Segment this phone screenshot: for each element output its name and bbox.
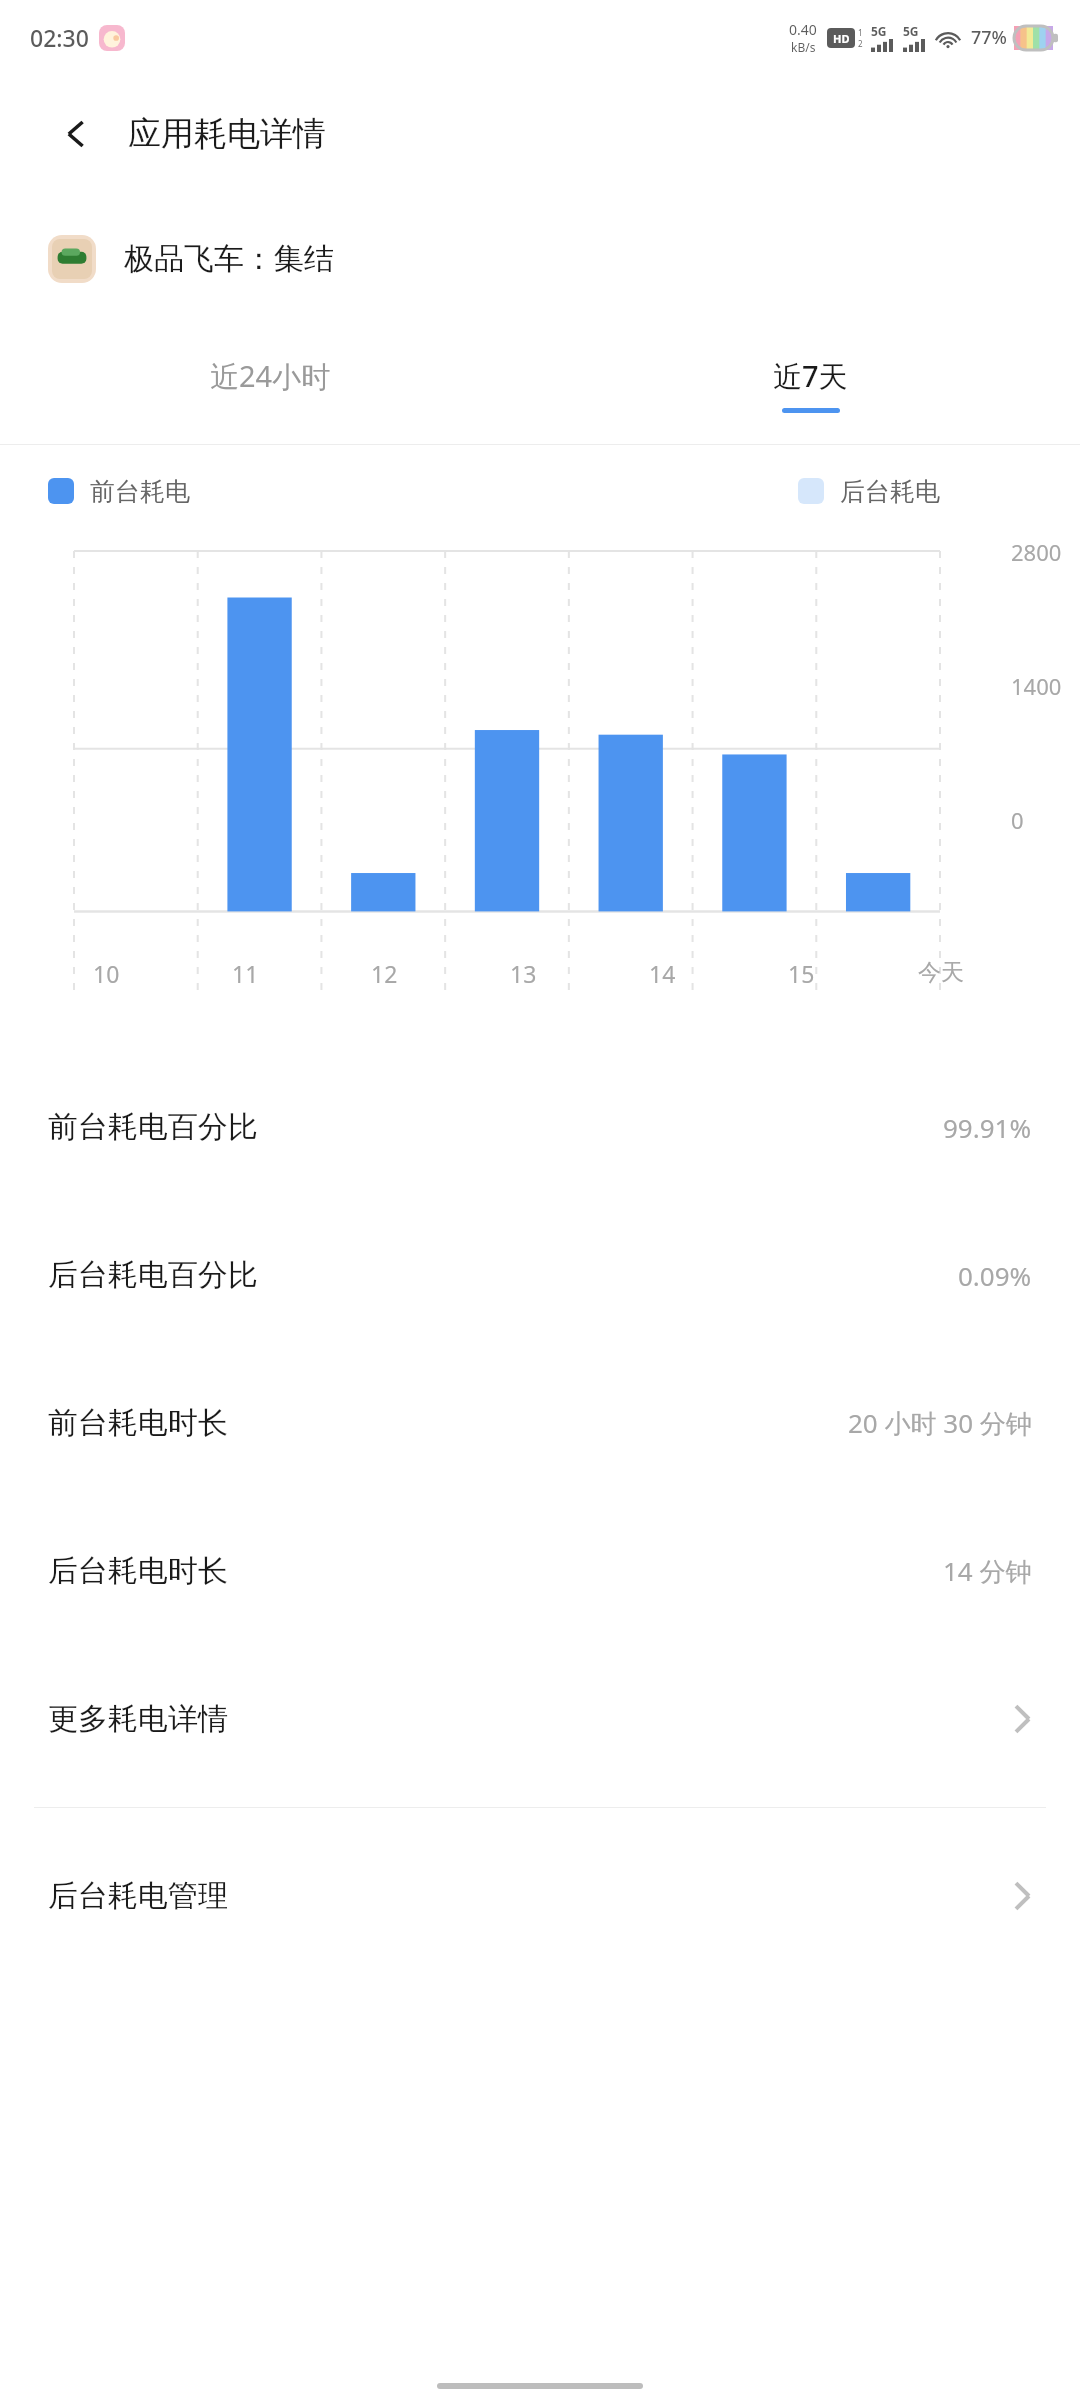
staticText: 2800: [1011, 537, 1062, 567]
staticText: 后台耗电管理: [48, 1877, 228, 1915]
staticText: 0.09%: [958, 1258, 1032, 1293]
button[interactable]: 后台耗电时长: [0, 1497, 1080, 1645]
staticText: 14 分钟: [943, 1553, 1032, 1589]
staticText: 后台耗电时长: [48, 1552, 228, 1590]
staticText: 77%: [971, 25, 1007, 50]
staticText: 应用耗电详情: [128, 113, 326, 155]
button[interactable]: 后台耗电管理: [0, 1822, 1080, 1970]
staticText: 1 2: [858, 27, 863, 49]
button[interactable]: 前台耗电时长: [0, 1349, 1080, 1497]
staticText: 13: [510, 958, 537, 989]
button[interactable]: 后台耗电百分比: [0, 1201, 1080, 1349]
staticText: 后台耗电百分比: [48, 1256, 258, 1294]
staticText: 1400: [1011, 671, 1062, 701]
staticText: 前台耗电时长: [48, 1404, 228, 1442]
staticText: 0.40: [789, 20, 817, 39]
staticText: 15: [788, 958, 815, 989]
staticText: 99.91%: [943, 1110, 1032, 1145]
staticText: 5G: [871, 23, 887, 39]
staticText: 今天: [918, 958, 964, 987]
staticText: 14: [649, 958, 676, 989]
staticText: 11: [232, 958, 259, 989]
staticText: 5G: [903, 23, 919, 39]
staticText: 前台耗电百分比: [48, 1108, 258, 1146]
staticText: kB/s: [791, 39, 816, 55]
staticText: 0: [1011, 805, 1024, 835]
staticText: 12: [371, 958, 398, 989]
staticText: HD: [833, 31, 850, 46]
button[interactable]: 更多耗电详情: [0, 1645, 1080, 1793]
staticText: 前台耗电: [90, 476, 190, 507]
button[interactable]: 近24小时: [0, 324, 540, 444]
staticText: 近7天: [773, 356, 848, 396]
button[interactable]: Back: [48, 106, 104, 162]
button[interactable]: 前台耗电百分比: [0, 1053, 1080, 1201]
staticText: 极品飞车：集结: [124, 240, 334, 278]
staticText: 02:30: [30, 22, 89, 53]
staticText: 更多耗电详情: [48, 1700, 228, 1738]
button[interactable]: 近7天: [540, 324, 1080, 444]
staticText: 近24小时: [210, 356, 331, 396]
staticText: 20 小时 30 分钟: [848, 1405, 1032, 1441]
staticText: 后台耗电: [840, 476, 940, 507]
staticText: 10: [93, 958, 120, 989]
